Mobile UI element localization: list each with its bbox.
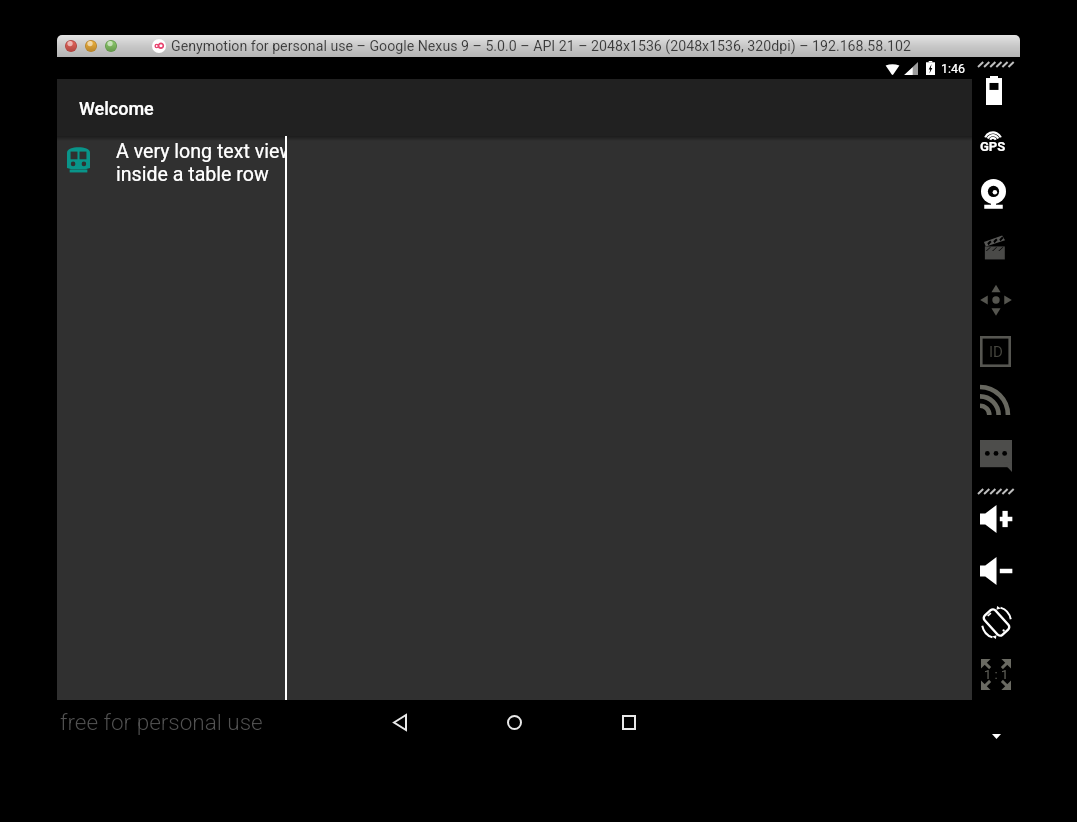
staticText: Welcome	[79, 98, 154, 119]
staticText: ID	[989, 343, 1003, 361]
button[interactable]: Battery	[986, 76, 1002, 105]
button[interactable]: Navigation pad	[980, 284, 1012, 316]
button[interactable]: Record video	[982, 235, 1006, 261]
staticText: GPS	[980, 139, 1006, 154]
button[interactable]: A very long text view inside a table row	[57, 136, 972, 196]
button[interactable]	[105, 40, 117, 52]
staticText: 1 : 1	[984, 667, 1009, 682]
button[interactable]: Home	[499, 706, 529, 738]
button[interactable]	[85, 40, 97, 52]
button[interactable]: Volume up	[980, 505, 1013, 533]
button[interactable]: Expand	[988, 729, 1004, 743]
button[interactable]: Volume down	[980, 557, 1013, 585]
button[interactable]: Scale 1:1	[980, 658, 1012, 691]
button[interactable]: Rotate	[981, 606, 1012, 639]
staticText: 1:46	[941, 61, 966, 76]
staticText: Genymotion for personal use – Google Nex…	[171, 38, 911, 55]
staticText: A very long text view inside a table row	[116, 140, 285, 186]
button[interactable]: Camera	[981, 179, 1006, 210]
button[interactable]: Network	[980, 388, 1007, 415]
button[interactable]: Messages	[980, 440, 1012, 472]
button[interactable]: GPS	[980, 129, 1006, 154]
button[interactable]: Back	[385, 706, 415, 738]
staticText: free for personal use	[60, 709, 263, 735]
button[interactable]	[65, 40, 77, 52]
button[interactable]: Identifiers	[980, 336, 1011, 367]
button[interactable]: Welcome	[57, 79, 972, 136]
button[interactable]: Recent apps	[614, 706, 644, 738]
